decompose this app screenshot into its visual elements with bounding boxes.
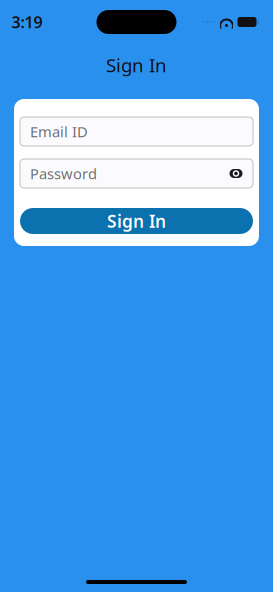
staticText: 3:19	[11, 11, 42, 33]
staticText: Email ID	[30, 122, 88, 141]
button[interactable]: Password	[20, 159, 253, 188]
button[interactable]: Email ID	[20, 117, 253, 146]
button[interactable]: Sign In	[20, 208, 253, 234]
staticText: Sign In	[106, 53, 167, 77]
staticText: Sign In	[107, 209, 166, 232]
staticText: Password	[30, 164, 97, 183]
